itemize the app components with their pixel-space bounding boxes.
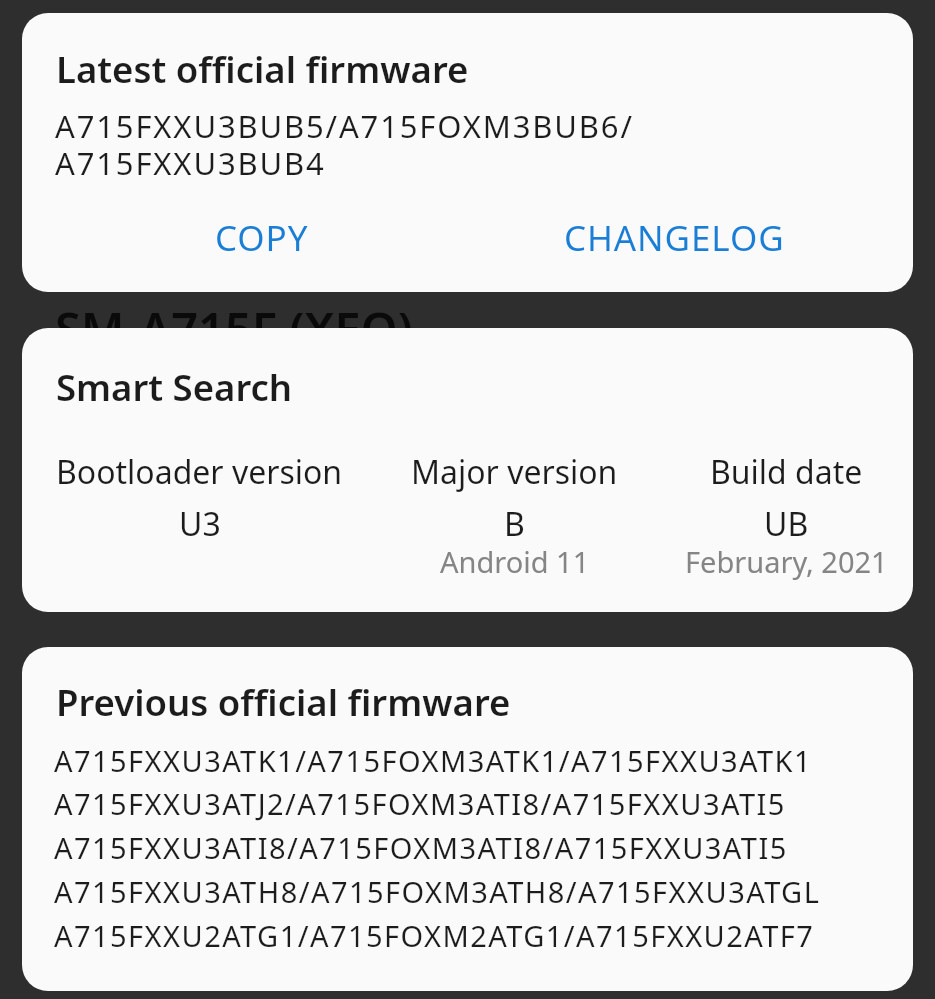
staticText: Android 11: [440, 542, 590, 581]
staticText: Smart Search: [56, 362, 293, 412]
button[interactable]: CHANGELOG: [468, 204, 881, 272]
button[interactable]: SM-A715F (XEO): [55, 297, 413, 361]
staticText: A715FXXU3ATK1/A715FOXM3ATK1/A715FXXU3ATK…: [54, 741, 821, 956]
staticText: COPY: [215, 214, 309, 262]
staticText: A715FXXU3BUB5/A715FOXM3BUB6/ A715FXXU3BU…: [55, 105, 634, 184]
staticText: Latest official firmware: [56, 44, 469, 94]
staticText: B: [504, 502, 525, 546]
button[interactable]: COPY: [55, 204, 468, 272]
staticText: SM-A715F (XEO): [55, 297, 413, 361]
staticText: CHANGELOG: [564, 214, 785, 262]
staticText: Previous official firmware: [56, 677, 511, 727]
staticText: U3: [179, 502, 221, 546]
staticText: Major version: [411, 450, 618, 494]
staticText: Bootloader version: [56, 450, 343, 494]
staticText: February, 2021: [685, 542, 888, 581]
staticText: UB: [764, 502, 809, 546]
staticText: Build date: [710, 450, 863, 494]
